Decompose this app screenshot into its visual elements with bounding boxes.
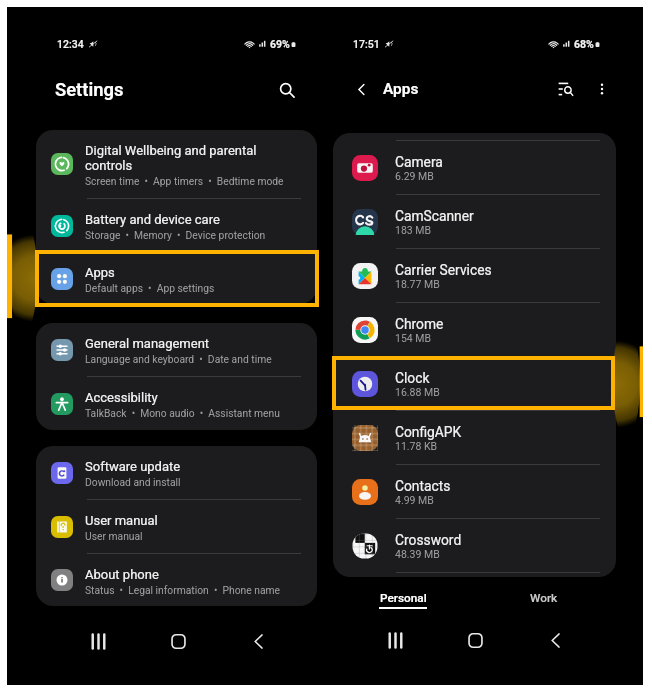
staticText: Crossword [395,532,462,548]
staticText: User manual [85,530,143,542]
staticText: 4.99 MB [395,494,434,506]
button[interactable]: Apps [36,253,317,304]
staticText: CamScanner [395,208,474,224]
button[interactable]: Back [242,625,274,657]
button[interactable]: Recents [82,625,114,657]
staticText: Chrome [395,316,444,332]
staticText: Work [530,591,558,605]
staticText: Battery and device care [85,212,220,227]
button[interactable]: Clock [333,357,616,410]
staticText: Personal [380,591,427,605]
button[interactable]: Sort and search [554,77,578,101]
button[interactable]: Camera [333,141,616,194]
staticText: Language and keyboard • Date and time [85,353,272,365]
staticText: Status • Legal information • Phone name [85,584,280,596]
button[interactable]: Home [162,625,194,657]
button[interactable]: Contacts [333,465,616,518]
staticText: Download and install [85,476,181,488]
staticText: ConfigAPK [395,424,462,440]
staticText: 6.29 MB [395,170,434,182]
staticText: 69% [270,38,290,50]
button[interactable]: Back [539,624,571,656]
button[interactable]: Personal [353,591,453,621]
button[interactable]: Accessibility [36,377,317,430]
staticText: 17:51 [353,38,380,50]
button[interactable]: Crossword [333,519,616,572]
staticText: 154 MB [395,332,432,344]
staticText: Contacts [395,478,451,494]
button[interactable]: User manual [36,500,317,553]
staticText: Apps [383,80,419,98]
staticText: 18.77 MB [395,278,440,290]
button[interactable]: Recents [379,624,411,656]
staticText: User manual [85,513,158,528]
staticText: Camera [395,154,443,170]
button[interactable]: Home [459,624,491,656]
button[interactable]: Back [349,77,373,101]
staticText: Carrier Services [395,262,492,278]
staticText: 183 MB [395,224,432,236]
button[interactable]: Software update [36,446,317,499]
button[interactable]: About phone [36,554,317,606]
staticText: Clock [395,370,430,386]
staticText: 68% [574,38,594,50]
staticText: 11.78 KB [395,440,438,452]
staticText: Default apps • App settings [85,282,215,294]
button[interactable]: ConfigAPK [333,411,616,464]
button[interactable]: Carrier Services [333,249,616,302]
staticText: General management [85,336,210,351]
staticText: Digital Wellbeing and parental controls [85,143,257,173]
staticText: Settings [55,79,124,101]
staticText: Screen time • App timers • Bedtime mode [85,175,284,187]
button[interactable]: Battery and device care [36,199,317,252]
button[interactable]: Search [274,77,300,103]
button[interactable]: More options [591,78,613,100]
staticText: TalkBack • Mono audio • Assistant menu [85,407,280,419]
staticText: Accessibility [85,390,158,405]
staticText: About phone [85,567,159,582]
staticText: 12:34 [57,38,84,50]
button[interactable]: General management [36,323,317,376]
button[interactable]: Chrome [333,303,616,356]
staticText: Apps [85,265,115,280]
button[interactable]: Work [494,591,594,621]
staticText: 16.88 MB [395,386,440,398]
staticText: Storage • Memory • Device protection [85,229,266,241]
staticText: 48.39 MB [395,548,440,560]
button[interactable]: CamScanner [333,195,616,248]
button[interactable]: Digital Wellbeing and parental controls [36,130,317,198]
staticText: Software update [85,459,181,474]
